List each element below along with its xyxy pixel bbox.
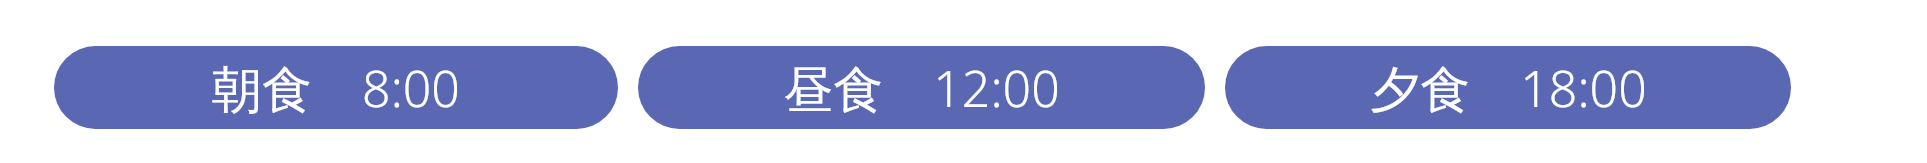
- staticText: 夕食 18:00: [1370, 54, 1647, 122]
- button[interactable]: 朝食 8:00: [54, 46, 618, 129]
- staticText: 朝食 8:00: [212, 54, 460, 122]
- button[interactable]: 夕食 18:00: [1225, 46, 1791, 129]
- button[interactable]: 昼食 12:00: [638, 46, 1205, 129]
- staticText: 昼食 12:00: [783, 54, 1060, 122]
